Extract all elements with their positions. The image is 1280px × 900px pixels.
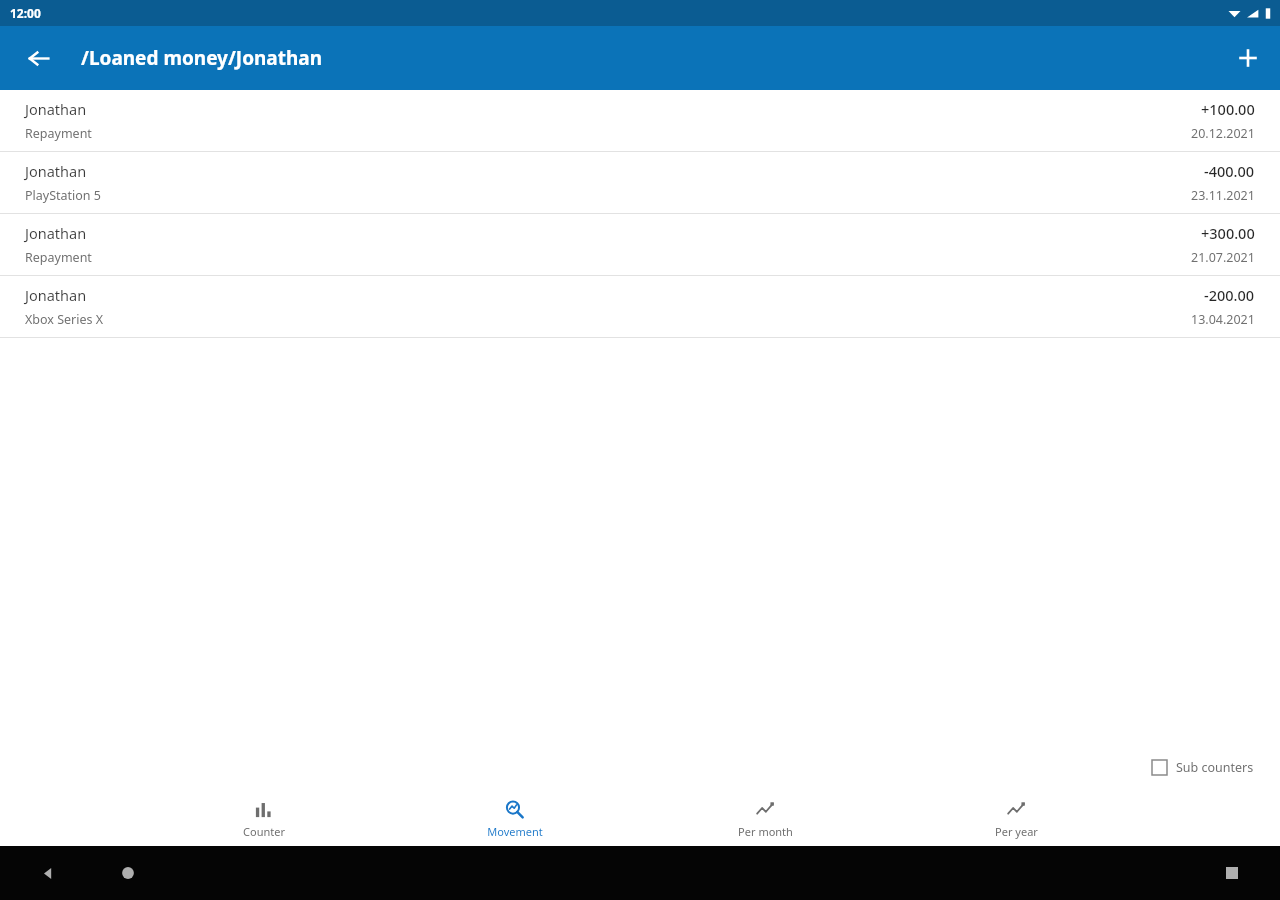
button[interactable]: Per month <box>640 792 891 846</box>
button[interactable]: Recent apps <box>1210 851 1254 895</box>
staticText: +100.00 <box>1201 99 1255 119</box>
staticText: Xbox Series X <box>25 311 104 328</box>
button[interactable]: Back <box>14 34 62 82</box>
button[interactable]: Add <box>1224 34 1272 82</box>
staticText: 13.04.2021 <box>1191 311 1255 328</box>
button[interactable]: Jonathan <box>0 152 1280 213</box>
staticText: PlayStation 5 <box>25 187 101 204</box>
button[interactable]: Counter <box>138 792 389 846</box>
staticText: 23.11.2021 <box>1191 187 1255 204</box>
button[interactable]: Home <box>106 851 150 895</box>
button[interactable]: Jonathan <box>0 276 1280 337</box>
staticText: /Loaned money/Jonathan <box>81 45 323 71</box>
staticText: Jonathan <box>25 161 87 181</box>
staticText: Repayment <box>25 125 92 142</box>
staticText: Per month <box>738 824 793 839</box>
button[interactable]: Sub counters <box>1148 755 1258 780</box>
staticText: 20.12.2021 <box>1191 125 1255 142</box>
staticText: Repayment <box>25 249 92 266</box>
staticText: Movement <box>487 824 543 839</box>
staticText: Jonathan <box>25 285 87 305</box>
staticText: Sub counters <box>1176 759 1254 776</box>
staticText: +300.00 <box>1201 223 1255 243</box>
staticText: Jonathan <box>25 99 87 119</box>
staticText: 21.07.2021 <box>1191 249 1255 266</box>
button[interactable]: Back <box>26 851 70 895</box>
staticText: Jonathan <box>25 223 87 243</box>
button[interactable]: Movement <box>389 792 640 846</box>
button[interactable]: Jonathan <box>0 214 1280 275</box>
staticText: Counter <box>243 824 285 839</box>
staticText: 12:00 <box>10 5 41 21</box>
button[interactable]: Per year <box>891 792 1142 846</box>
staticText: -400.00 <box>1204 161 1255 181</box>
staticText: Per year <box>995 824 1038 839</box>
staticText: -200.00 <box>1204 285 1255 305</box>
button[interactable]: Jonathan <box>0 90 1280 151</box>
